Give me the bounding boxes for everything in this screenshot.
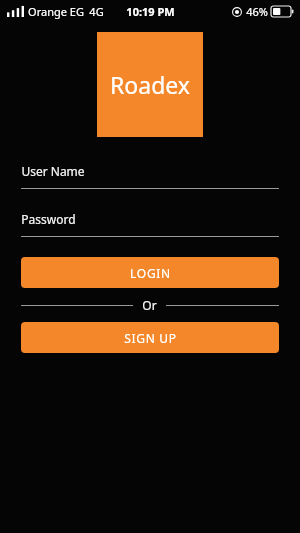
button[interactable]: Password	[21, 211, 279, 237]
staticText: 10:19 PM	[126, 4, 175, 19]
staticText: User Name	[21, 163, 85, 179]
button[interactable]: LOGIN	[21, 257, 279, 288]
staticText: SIGN UP	[124, 330, 177, 346]
staticText: Orange EG	[28, 4, 84, 19]
staticText: 46%	[246, 4, 268, 19]
staticText: LOGIN	[130, 265, 171, 281]
staticText: Password	[21, 211, 76, 227]
button[interactable]: User Name	[21, 163, 279, 189]
staticText: Roadex	[110, 69, 190, 100]
button[interactable]: SIGN UP	[21, 322, 279, 353]
staticText: 4G	[89, 4, 104, 19]
staticText: Or	[142, 297, 157, 313]
